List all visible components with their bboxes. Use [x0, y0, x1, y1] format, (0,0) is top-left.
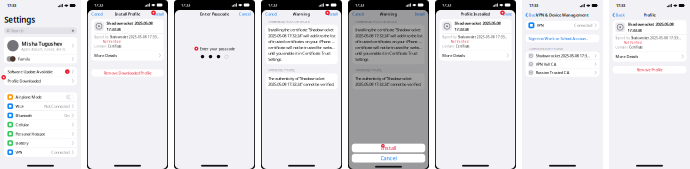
staticText: Enter your passcode [200, 46, 235, 51]
staticText: Contains [615, 46, 627, 49]
staticText: Apple Account, iCloud, and more [21, 48, 66, 51]
staticText: The authenticity of “Shadowrocket [355, 76, 411, 81]
staticText: Warning [292, 11, 310, 17]
staticText: Signed by [442, 35, 456, 39]
staticText: Install [381, 144, 396, 152]
staticText: Sign in to Work or School Account… [528, 36, 589, 41]
staticText: Cancel [380, 155, 396, 162]
button[interactable]: Remove Profile [613, 66, 686, 73]
staticText: 17:33 [7, 3, 16, 8]
staticText: Cancel [265, 11, 277, 17]
button[interactable]: Cancel [265, 11, 277, 17]
staticText: Done [503, 11, 512, 17]
staticText: Shadowrocket 2025-05-08 [106, 21, 152, 26]
button[interactable]: Sign in to Work or School Account… [526, 34, 599, 42]
staticText: Not Connected [44, 104, 69, 109]
staticText: Contains [442, 45, 454, 48]
staticText: 17:33 [529, 3, 538, 8]
staticText: Battery [15, 140, 28, 146]
staticText: On [64, 113, 69, 118]
staticText: UNVERIFIED PROFILE [268, 69, 294, 72]
button[interactable]: More Details [91, 50, 164, 60]
staticText: Remove Profile [636, 67, 662, 72]
button[interactable]: Cancel [352, 154, 425, 162]
staticText: Misha Tugushev [21, 40, 62, 47]
staticText: 17:33 [442, 2, 451, 8]
staticText: Shadowrocket 2025-05-08 [454, 21, 500, 26]
staticText: certificate will not be trusted for webs… [268, 45, 335, 50]
button[interactable]: Back [525, 12, 537, 18]
staticText: Install [328, 11, 338, 17]
button[interactable]: Battery [4, 139, 77, 147]
button[interactable]: Cancel [352, 11, 364, 17]
staticText: Cancel [352, 11, 364, 17]
staticText: Settings [4, 14, 35, 25]
staticText: VPN Voll CA [536, 61, 557, 67]
staticText: Not Verified [624, 41, 642, 44]
staticText: Warning [379, 11, 397, 17]
staticText: Installing the certificate “Shadowrocket [355, 27, 420, 32]
button[interactable]: Remove Downloaded Profile [91, 69, 164, 77]
staticText: Wi-Fi [15, 104, 24, 109]
staticText: Settings. [355, 56, 369, 62]
button[interactable]: Airplane Mode [4, 93, 77, 101]
staticText: Shadowrocket 2025-05-08 17:33:34 [631, 36, 682, 40]
staticText: Search [11, 28, 23, 33]
staticText: Signed by [94, 35, 108, 39]
button[interactable]: Cancel [239, 11, 251, 17]
staticText: 17:33:34 [106, 26, 120, 32]
staticText: of trusted certificates on your iPhone. … [268, 39, 335, 44]
button[interactable]: Done [503, 11, 512, 17]
staticText: 1 [66, 70, 68, 73]
staticText: VPN [15, 150, 22, 155]
staticText: Not Verified [103, 40, 121, 43]
button[interactable]: Profile Downloaded [4, 76, 77, 85]
button[interactable]: Family [4, 55, 77, 63]
button[interactable]: Russian Trusted CA [526, 68, 599, 76]
button[interactable]: Install [154, 11, 164, 17]
staticText: until you enable it in Certificate Trust [355, 51, 417, 56]
button[interactable]: Bluetooth [4, 111, 77, 120]
staticText: 2025-05-08 17:32:24” will add it to the … [268, 33, 335, 38]
staticText: Profile [643, 12, 655, 18]
button[interactable]: Misha Tugushev [4, 37, 77, 54]
button[interactable]: Install [352, 144, 425, 152]
staticText: Bluetooth [15, 113, 31, 118]
staticText: 17:33:34 [628, 27, 642, 33]
staticText: until you enable it in Certificate Trust [268, 51, 330, 56]
staticText: Signed by [615, 36, 629, 40]
button[interactable]: Software Update Available [4, 67, 77, 76]
staticText: Install [415, 11, 425, 17]
staticText: Connected [574, 23, 592, 28]
staticText: UNVERIFIED PROFILE [355, 69, 381, 72]
button[interactable]: Personal Hotspot [4, 129, 77, 138]
button[interactable]: Wi-Fi [4, 102, 77, 111]
staticText: Shadowrocket 2025-05-08 17:3… [536, 53, 590, 58]
staticText: 2025-05-08 17:32:24” cannot be verified. [268, 82, 334, 87]
button[interactable]: Back [612, 12, 624, 18]
staticText: 2025-05-08 17:32:24” will add it to the … [355, 33, 422, 38]
staticText: Software Update Available [7, 69, 52, 74]
button[interactable]: Shadowrocket 2025-05-08 17:3… [526, 52, 599, 60]
staticText: Cellular [15, 122, 29, 127]
staticText: 2025-05-08 17:32:24” cannot be verified. [355, 82, 421, 87]
staticText: Shadowrocket 2025-05-08 17:33:34 [458, 35, 507, 39]
button[interactable]: VPN Voll CA [526, 60, 599, 68]
staticText: Remove Downloaded Profile [103, 70, 151, 76]
button[interactable]: Cellular [4, 120, 77, 129]
staticText: More Details [442, 53, 465, 58]
button[interactable]: Install [328, 11, 338, 17]
staticText: Profile Installed [460, 11, 490, 17]
button[interactable]: VPN [526, 21, 599, 30]
button[interactable]: Cancel [91, 11, 103, 17]
button[interactable]: Install [415, 11, 425, 17]
staticText: 17:33 [616, 3, 625, 8]
button[interactable]: More Details [439, 50, 512, 60]
button[interactable]: VPN [4, 148, 77, 157]
staticText: Cancel [91, 11, 103, 17]
staticText: The authenticity of “Shadowrocket [268, 76, 324, 81]
staticText: Airplane Mode [15, 94, 41, 100]
button[interactable]: More Details [613, 51, 686, 61]
staticText: Personal Hotspot [15, 131, 44, 136]
staticText: VPN [537, 23, 544, 28]
